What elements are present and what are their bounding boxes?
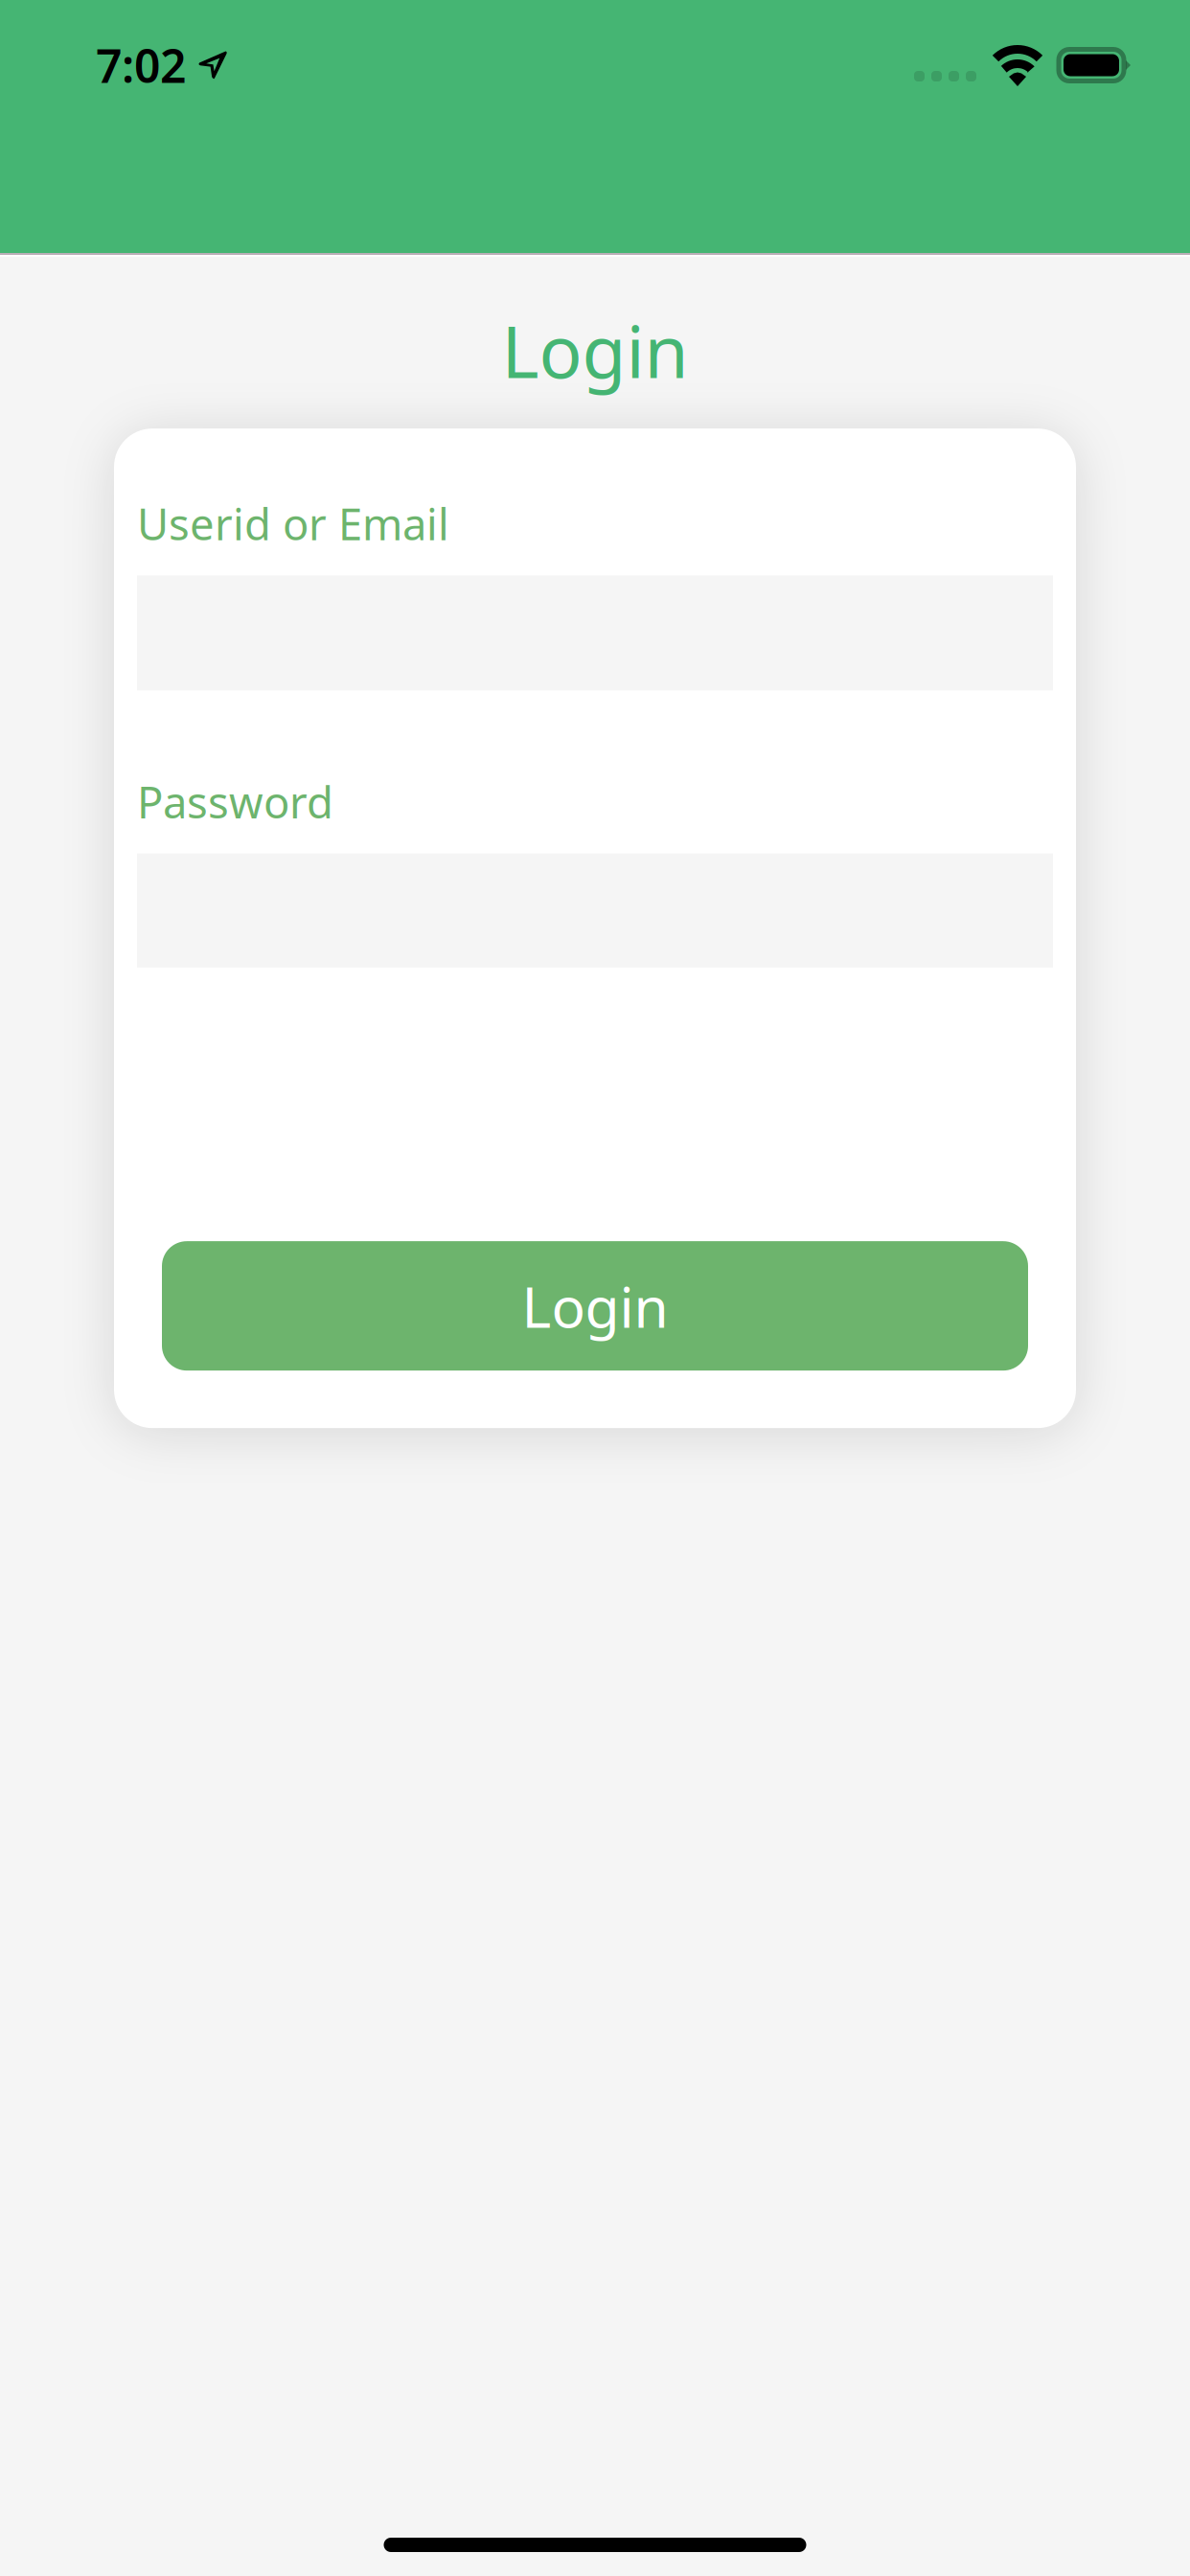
staticText: Userid or Email bbox=[137, 495, 449, 552]
staticText: 7:02 bbox=[96, 35, 186, 96]
staticText: Login bbox=[522, 1269, 668, 1343]
staticText: Password bbox=[137, 773, 333, 830]
button[interactable]: Login bbox=[162, 1241, 1028, 1371]
staticText: Login bbox=[502, 303, 688, 398]
